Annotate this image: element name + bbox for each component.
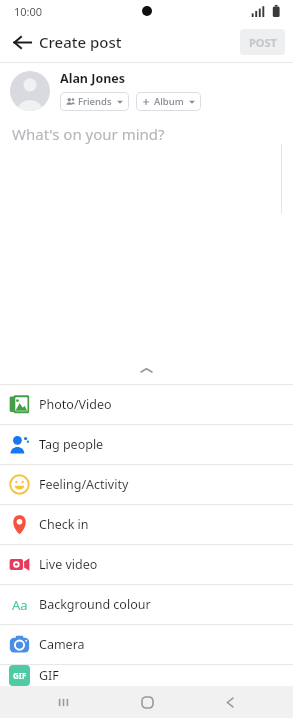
button[interactable]: Photo/Video [0,385,293,424]
staticText: Alan Jones [60,70,126,87]
button[interactable]: Back [210,686,250,718]
button[interactable]: Recents [43,686,83,718]
staticText: What's on your mind? [12,124,165,144]
staticText: Aa [12,596,28,614]
button[interactable]: Aa [0,585,293,624]
staticText: Camera [39,636,85,653]
button[interactable]: Home [127,686,167,718]
staticText: Friends [78,95,112,108]
staticText: POST [249,35,277,50]
staticText: Photo/Video [39,396,112,413]
staticText: Create post [39,32,122,52]
staticText: Album [154,95,184,108]
button[interactable]: Tag people [0,425,293,464]
staticText: GIF [13,670,27,681]
staticText: Background colour [39,596,151,613]
button[interactable]: Back [6,26,38,58]
staticText: Check in [39,516,89,533]
button[interactable]: GIF [0,665,293,686]
staticText: Feeling/Activity [39,476,129,493]
button[interactable]: Camera [0,625,293,664]
staticText: 10:00 [14,4,43,19]
staticText: GIF [39,667,59,684]
staticText: Tag people [39,436,104,453]
button[interactable]: Friends [60,92,129,111]
button[interactable]: Live video [0,545,293,584]
button[interactable]: Feeling/Activity [0,465,293,504]
button[interactable]: POST [240,29,285,55]
button[interactable]: Collapse [0,356,293,384]
button[interactable]: Album [136,92,201,111]
staticText: Live video [39,556,98,573]
button[interactable]: Check in [0,505,293,544]
